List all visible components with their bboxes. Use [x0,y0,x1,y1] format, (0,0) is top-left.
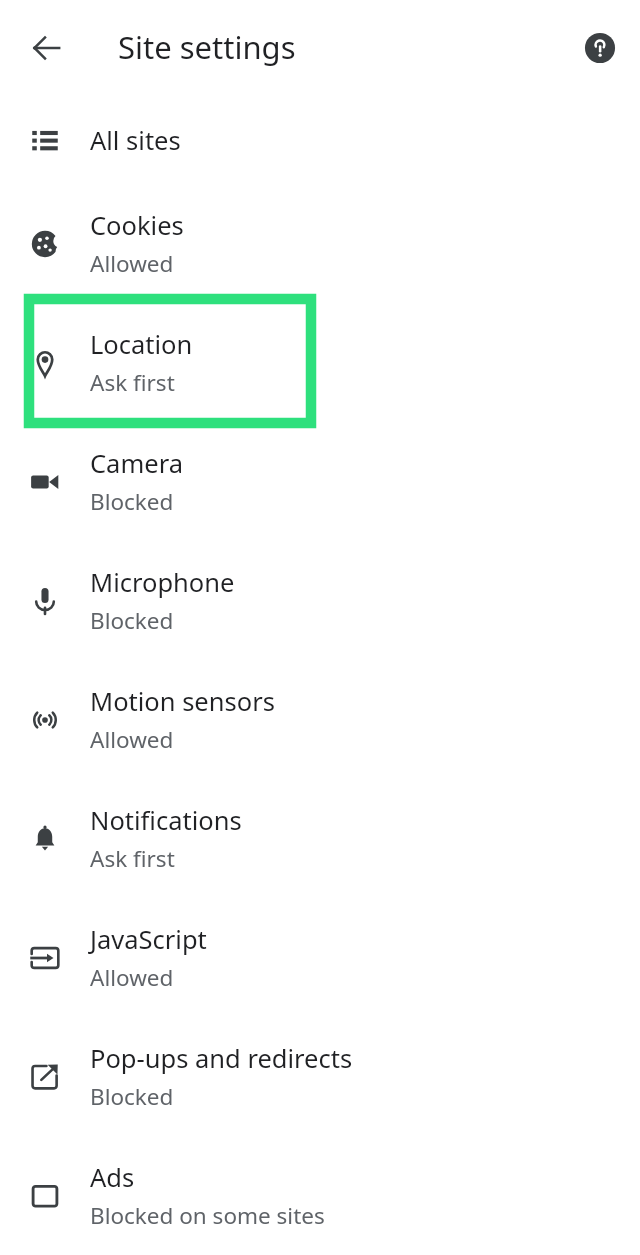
staticText: All sites [90,123,181,158]
button[interactable]: Pop-ups and redirects [0,1017,640,1136]
button[interactable]: Microphone [0,541,640,660]
staticText: Allowed [90,962,174,993]
staticText: Blocked [90,486,174,517]
staticText: Allowed [90,724,174,755]
staticText: Ask first [90,367,175,398]
staticText: Pop-ups and redirects [90,1041,353,1076]
button[interactable]: Back [23,24,71,72]
button[interactable]: Notifications [0,779,640,898]
button[interactable]: All sites [0,96,640,184]
staticText: Blocked [90,605,174,636]
staticText: JavaScript [90,922,207,957]
button[interactable]: Location [0,303,640,422]
staticText: Ads [90,1160,135,1195]
button[interactable]: JavaScript [0,898,640,1017]
button[interactable]: Camera [0,422,640,541]
staticText: Ask first [90,843,175,874]
button[interactable]: Help [576,24,624,72]
staticText: Blocked [90,1081,174,1112]
staticText: Allowed [90,248,174,279]
staticText: Notifications [90,803,242,838]
staticText: Site settings [118,26,296,68]
staticText: Blocked on some sites [90,1200,325,1231]
staticText: Motion sensors [90,684,275,719]
staticText: Location [90,327,193,362]
staticText: Cookies [90,208,184,243]
staticText: Camera [90,446,183,481]
button[interactable]: Cookies [0,184,640,303]
staticText: Microphone [90,565,235,600]
button[interactable]: Motion sensors [0,660,640,779]
button[interactable]: Ads [0,1136,640,1255]
